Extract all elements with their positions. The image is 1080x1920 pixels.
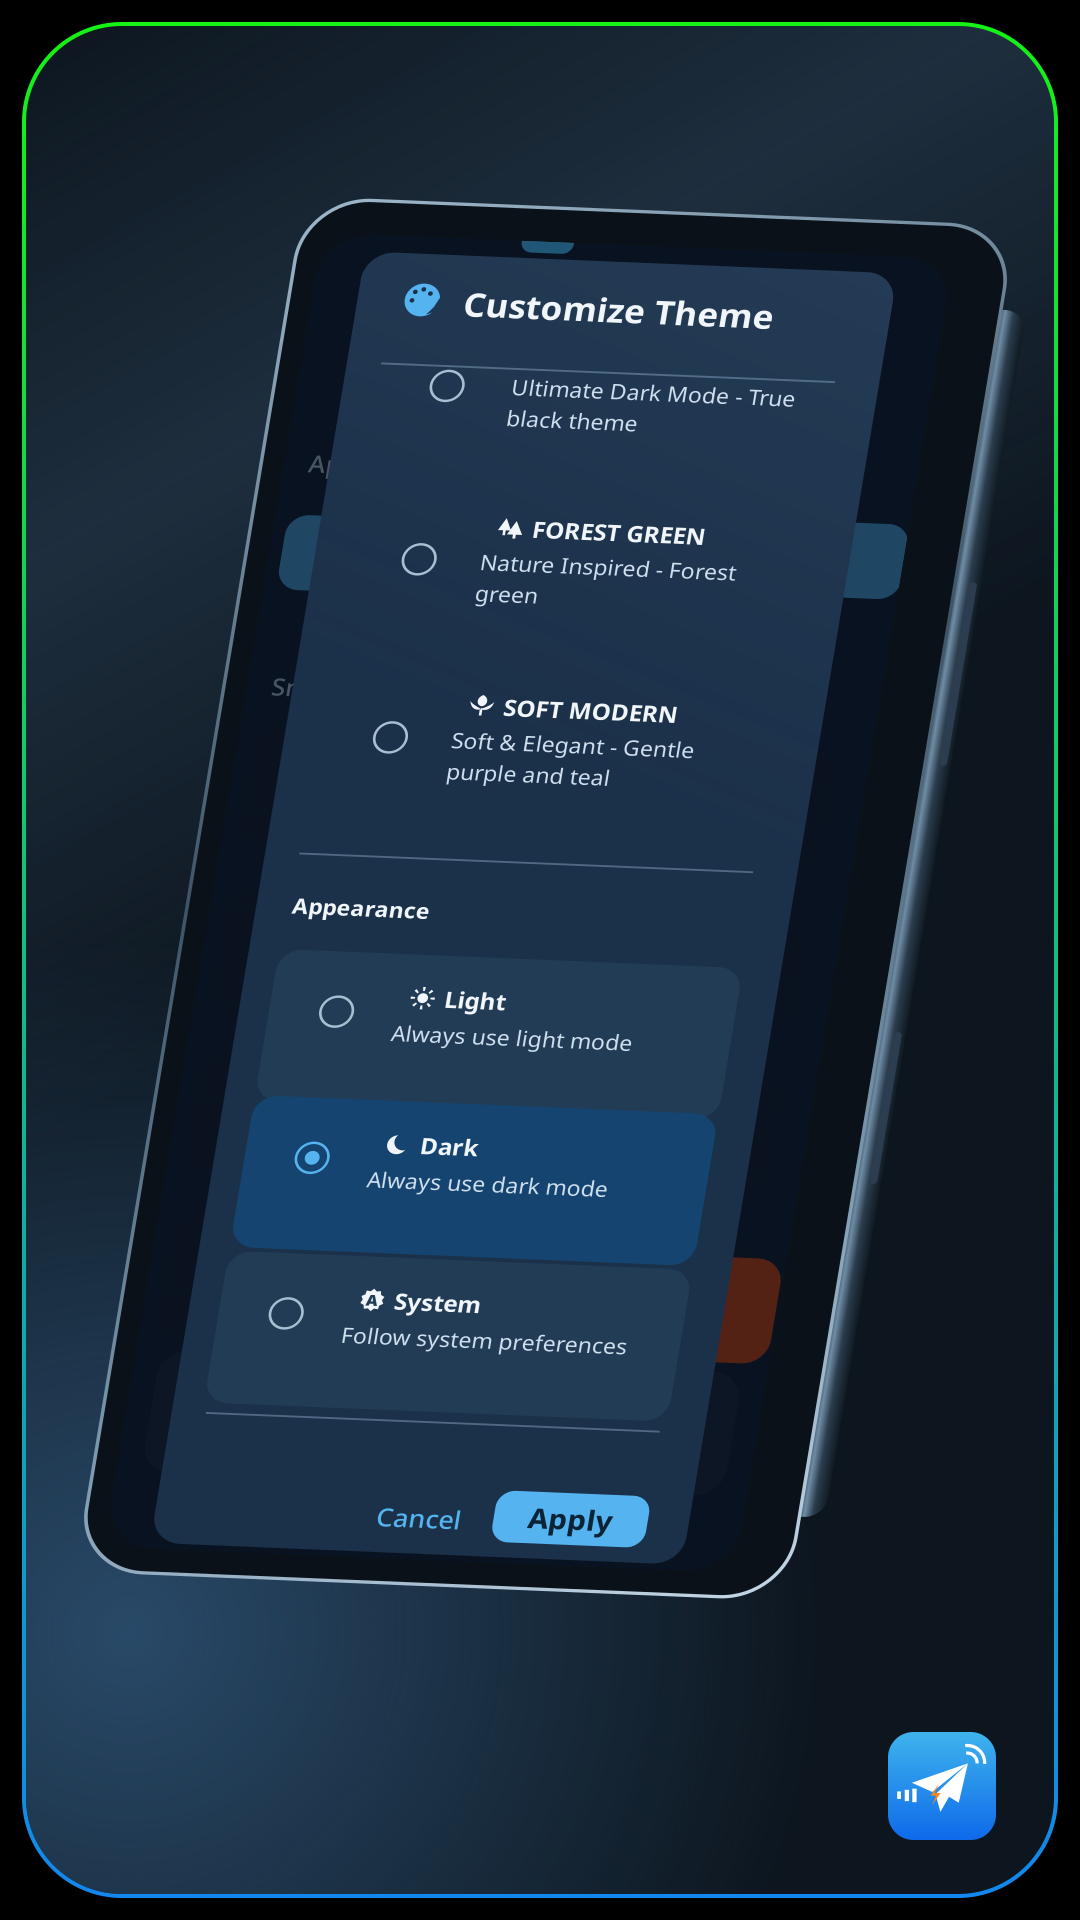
staticText: purple and teal (540, 784, 703, 814)
staticText: Nature Inspired - Forest (539, 561, 794, 591)
button[interactable]: Apply (710, 1559, 863, 1614)
button[interactable]: SOFT MODERN (463, 713, 863, 843)
button[interactable]: Dark (404, 1151, 866, 1313)
button[interactable]: A (404, 1317, 866, 1479)
staticText: Soft & Elegant - Gentle (540, 751, 782, 781)
staticText: Ultimate Dark Mode - True (541, 374, 824, 404)
staticText: General (381, 1516, 466, 1546)
staticText: Settings (757, 1516, 843, 1546)
staticText: Dark (576, 1181, 634, 1213)
staticText: System (576, 1347, 662, 1379)
staticText: black theme (541, 407, 672, 437)
staticText: Apply (744, 1567, 828, 1606)
staticText: Cancel (594, 1574, 678, 1610)
button[interactable]: Light (404, 995, 866, 1157)
staticText: Always use dark mode (529, 1220, 769, 1250)
staticText: Customize Theme (480, 280, 789, 326)
button[interactable]: FOREST GREEN (462, 523, 862, 653)
staticText: SOFT MODERN (586, 713, 760, 745)
staticText: Follow system preferences (529, 1386, 814, 1416)
staticText: FOREST GREEN (585, 523, 758, 555)
staticText: Appearance (410, 933, 547, 963)
staticText: Light (576, 1025, 637, 1057)
staticText: Always use light mode (529, 1064, 769, 1094)
button[interactable]: Cancel (581, 1566, 691, 1618)
staticText: Smart (353, 700, 426, 734)
